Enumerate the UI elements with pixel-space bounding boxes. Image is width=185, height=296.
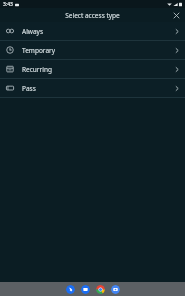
staticText: Pass [22,84,36,93]
staticText: Temporary [22,46,56,55]
staticText: Always [22,27,44,36]
button[interactable]: Recurring [0,60,185,78]
button[interactable]: Temporary [0,41,185,59]
button[interactable]: Chrome [96,285,105,294]
staticText: Select access type [65,11,120,20]
button[interactable]: Always [0,22,185,40]
staticText: Recurring [22,65,52,74]
staticText: 3:43 [3,1,13,8]
button[interactable]: Close [171,10,182,21]
button[interactable]: Pass [0,79,185,97]
button[interactable]: Camera [111,285,120,294]
button[interactable]: Messages [81,285,90,294]
button[interactable]: Phone [66,285,75,294]
